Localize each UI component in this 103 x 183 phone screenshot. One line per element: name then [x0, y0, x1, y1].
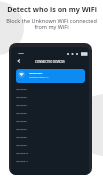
- staticText: 192.168.0.10: [16, 152, 28, 155]
- staticText: Block the Unknown WiFi connected from my…: [5, 17, 98, 30]
- button[interactable]: 192.168.0.8: [16, 133, 89, 141]
- button[interactable]: Back: [15, 57, 23, 65]
- staticText: Linksys-4949: [29, 72, 43, 75]
- button[interactable]: 192.168.0.5: [16, 109, 89, 117]
- button[interactable]: Linksys-4949: [16, 69, 85, 83]
- staticText: 192.168.0.4: [16, 104, 27, 107]
- button[interactable]: 192.168.0.3: [16, 93, 89, 101]
- staticText: 192.168.0.3: [16, 96, 27, 99]
- button[interactable]: 192.168.0.4: [16, 101, 89, 109]
- staticText: 192.168.0.7: [16, 128, 27, 131]
- staticText: 192.168.0.5: [16, 112, 27, 115]
- staticText: 12:30: [18, 52, 24, 55]
- button[interactable]: 192.168.0.2: [16, 85, 89, 93]
- button[interactable]: 192.168.0.11: [16, 157, 89, 165]
- staticText: Connected devices : 10: [29, 76, 49, 78]
- staticText: 192.168.0.6: [16, 120, 27, 123]
- staticText: 192.168.0.2: [16, 88, 27, 91]
- button[interactable]: 192.168.0.10: [16, 149, 89, 157]
- button[interactable]: 192.168.0.6: [16, 117, 89, 125]
- staticText: Detect who is on my WiFi: [7, 4, 97, 14]
- staticText: 192.168.0.8: [16, 136, 27, 139]
- button[interactable]: 192.168.0.7: [16, 125, 89, 133]
- button[interactable]: 192.168.0.9: [16, 141, 89, 149]
- staticText: CONNECTED DEVICES: [35, 60, 65, 64]
- staticText: 192.168.0.9: [16, 144, 27, 147]
- staticText: 192.168.0.11: [16, 160, 28, 163]
